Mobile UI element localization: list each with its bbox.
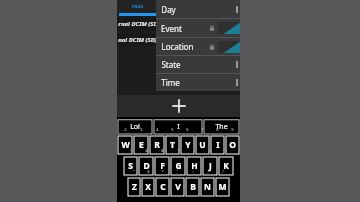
staticText: * xyxy=(161,169,164,174)
button[interactable]: B xyxy=(186,178,199,196)
staticText: C xyxy=(160,181,166,193)
button[interactable]: T xyxy=(166,136,179,154)
staticText: * xyxy=(177,148,180,153)
staticText: nal DCIM (SD) xyxy=(118,36,157,44)
button[interactable]: D xyxy=(139,157,153,175)
staticText: Time xyxy=(161,77,180,88)
staticText: R xyxy=(154,139,160,151)
staticText: 6 xyxy=(186,127,189,132)
staticText: W xyxy=(121,139,130,151)
staticText: 4 xyxy=(156,127,159,132)
staticText: - xyxy=(193,148,195,153)
staticText: FILES xyxy=(132,4,143,10)
button[interactable]: V xyxy=(171,178,184,196)
staticText: F xyxy=(160,160,165,172)
button[interactable]: N xyxy=(201,178,214,196)
button[interactable]: Y xyxy=(181,136,194,154)
staticText: G xyxy=(175,160,182,172)
staticText: ; xyxy=(207,169,209,174)
button[interactable]: M xyxy=(216,178,229,196)
staticText: E xyxy=(139,139,144,151)
staticText: $ xyxy=(147,169,150,174)
staticText: Day xyxy=(161,4,176,15)
staticText: I xyxy=(216,139,220,151)
button[interactable]: O xyxy=(226,136,239,154)
button[interactable]: TAGS xyxy=(158,0,199,13)
button[interactable]: H xyxy=(187,157,201,175)
staticText: Y xyxy=(185,139,191,151)
staticText: 8 xyxy=(216,127,219,132)
staticText: Lol xyxy=(130,122,140,132)
button[interactable]: X xyxy=(142,178,154,196)
staticText: V xyxy=(175,181,181,193)
staticText: J xyxy=(209,160,212,172)
staticText: ' xyxy=(177,169,178,174)
button[interactable]: Event xyxy=(156,19,240,37)
staticText: I xyxy=(177,122,180,132)
staticText: 9 xyxy=(231,127,234,132)
staticText: O xyxy=(229,139,236,151)
button[interactable]: I xyxy=(211,136,224,154)
staticText: M xyxy=(218,181,227,193)
staticText: 5 xyxy=(171,127,174,132)
staticText: " xyxy=(133,169,135,174)
staticText: X xyxy=(145,181,151,193)
staticText: K xyxy=(223,160,229,172)
staticText: 3 xyxy=(140,127,143,132)
staticText: Z xyxy=(132,181,137,193)
staticText: rnal DCIM (SD) xyxy=(118,20,160,28)
staticText: 7 xyxy=(201,127,204,132)
staticText: TAGS xyxy=(173,4,184,10)
button[interactable]: FILES xyxy=(117,0,158,13)
staticText: 2 xyxy=(124,127,127,132)
button[interactable]: nal DCIM (SD) xyxy=(117,34,240,46)
staticText: & xyxy=(161,148,164,153)
staticText: H xyxy=(191,160,198,172)
staticText: : xyxy=(192,169,194,174)
staticText: ( xyxy=(225,148,227,153)
button[interactable]: Location xyxy=(156,38,240,55)
staticText: N xyxy=(204,181,211,193)
button[interactable]: R xyxy=(150,136,164,154)
staticText: Location xyxy=(161,41,194,52)
staticText: The xyxy=(215,122,228,132)
button[interactable]: Day xyxy=(156,0,240,18)
staticText: + xyxy=(209,148,212,153)
staticText: ! xyxy=(130,148,132,153)
staticText: B xyxy=(190,181,196,193)
staticText: / xyxy=(222,169,224,174)
button[interactable]: Lol xyxy=(118,119,152,134)
staticText: T xyxy=(170,139,175,151)
button[interactable]: S xyxy=(124,157,137,175)
button[interactable]: SCENES xyxy=(199,0,240,13)
button[interactable]: K xyxy=(219,157,233,175)
button[interactable]: W xyxy=(118,136,132,154)
button[interactable]: Z xyxy=(128,178,140,196)
button[interactable]: I xyxy=(154,119,202,134)
button[interactable]: U xyxy=(196,136,209,154)
staticText: State xyxy=(161,59,181,70)
staticText: Event xyxy=(161,23,182,34)
button[interactable]: E xyxy=(134,136,148,154)
staticText: # xyxy=(145,148,148,153)
button[interactable]: Add xyxy=(117,95,240,117)
staticText: S xyxy=(128,160,133,172)
button[interactable]: State xyxy=(156,56,240,73)
staticText: U xyxy=(199,139,206,151)
button[interactable]: F xyxy=(155,157,169,175)
button[interactable]: G xyxy=(171,157,185,175)
button[interactable]: C xyxy=(156,178,169,196)
staticText: D xyxy=(143,160,150,172)
button[interactable]: The xyxy=(204,119,239,134)
button[interactable]: rnal DCIM (SD) xyxy=(117,18,240,30)
button[interactable]: Time xyxy=(156,74,240,91)
button[interactable]: J xyxy=(203,157,217,175)
